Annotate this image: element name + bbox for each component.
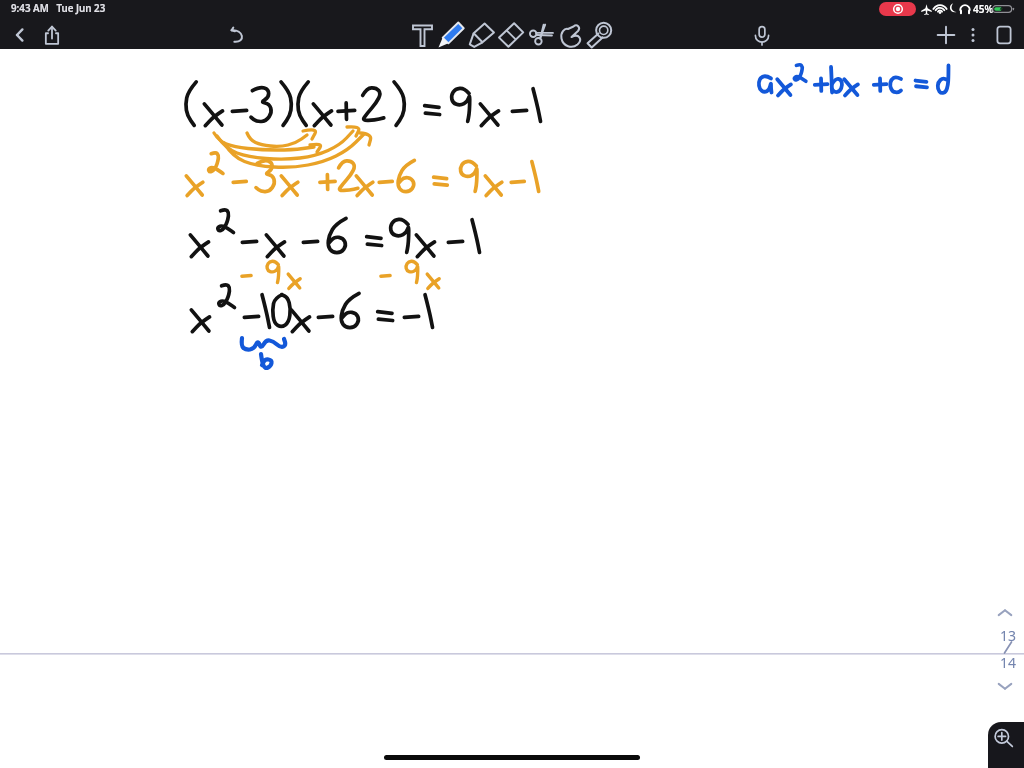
staticText: 14 bbox=[1000, 653, 1017, 672]
button[interactable]: Next page bbox=[991, 672, 1019, 700]
button[interactable]: Eraser bbox=[495, 19, 527, 51]
button[interactable]: Pages bbox=[989, 20, 1019, 50]
button[interactable]: Text tool bbox=[406, 19, 438, 51]
button[interactable]: Microphone bbox=[747, 20, 777, 50]
staticText: 9:43 AM Tue Jun 23 bbox=[11, 2, 106, 15]
staticText: 45% bbox=[973, 2, 994, 16]
button[interactable]: Screen recording bbox=[879, 2, 916, 16]
button[interactable]: Share bbox=[37, 20, 67, 50]
button[interactable]: Add bbox=[931, 20, 961, 50]
button[interactable]: Pen bbox=[435, 19, 467, 51]
button[interactable]: More options bbox=[958, 20, 988, 50]
button[interactable]: Hand bbox=[555, 19, 587, 51]
button[interactable]: Zoom in bbox=[988, 722, 1024, 768]
button[interactable]: Lasso bbox=[525, 19, 557, 51]
button[interactable]: Undo bbox=[222, 20, 252, 50]
button[interactable]: Previous page bbox=[991, 599, 1019, 627]
button[interactable]: Laser pointer bbox=[583, 19, 615, 51]
button[interactable]: Back bbox=[5, 20, 35, 50]
button[interactable]: Highlighter bbox=[466, 19, 498, 51]
staticText: 13 bbox=[1000, 626, 1017, 645]
